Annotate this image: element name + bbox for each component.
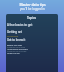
staticText: Complete your profile — [7, 50, 27, 53]
button[interactable] — [6, 44, 58, 48]
staticText: A few basics to get — [7, 23, 33, 27]
staticText: Complete your login — [7, 46, 26, 49]
staticText: Wrap it all up — [7, 52, 20, 55]
button[interactable] — [6, 29, 58, 35]
button[interactable] — [6, 52, 58, 56]
staticText: Before you start — [7, 44, 23, 47]
staticText: Get to know it — [7, 38, 26, 42]
staticText: Master data tips — [19, 2, 46, 6]
staticText: SECTIONS — [7, 35, 19, 38]
staticText: Getting set — [7, 30, 22, 34]
staticText: Topics — [27, 16, 37, 20]
staticText: Understand the basics — [7, 48, 29, 51]
button[interactable] — [6, 22, 58, 28]
button[interactable] — [6, 48, 58, 52]
staticText: you'll be logged in — [20, 7, 45, 11]
